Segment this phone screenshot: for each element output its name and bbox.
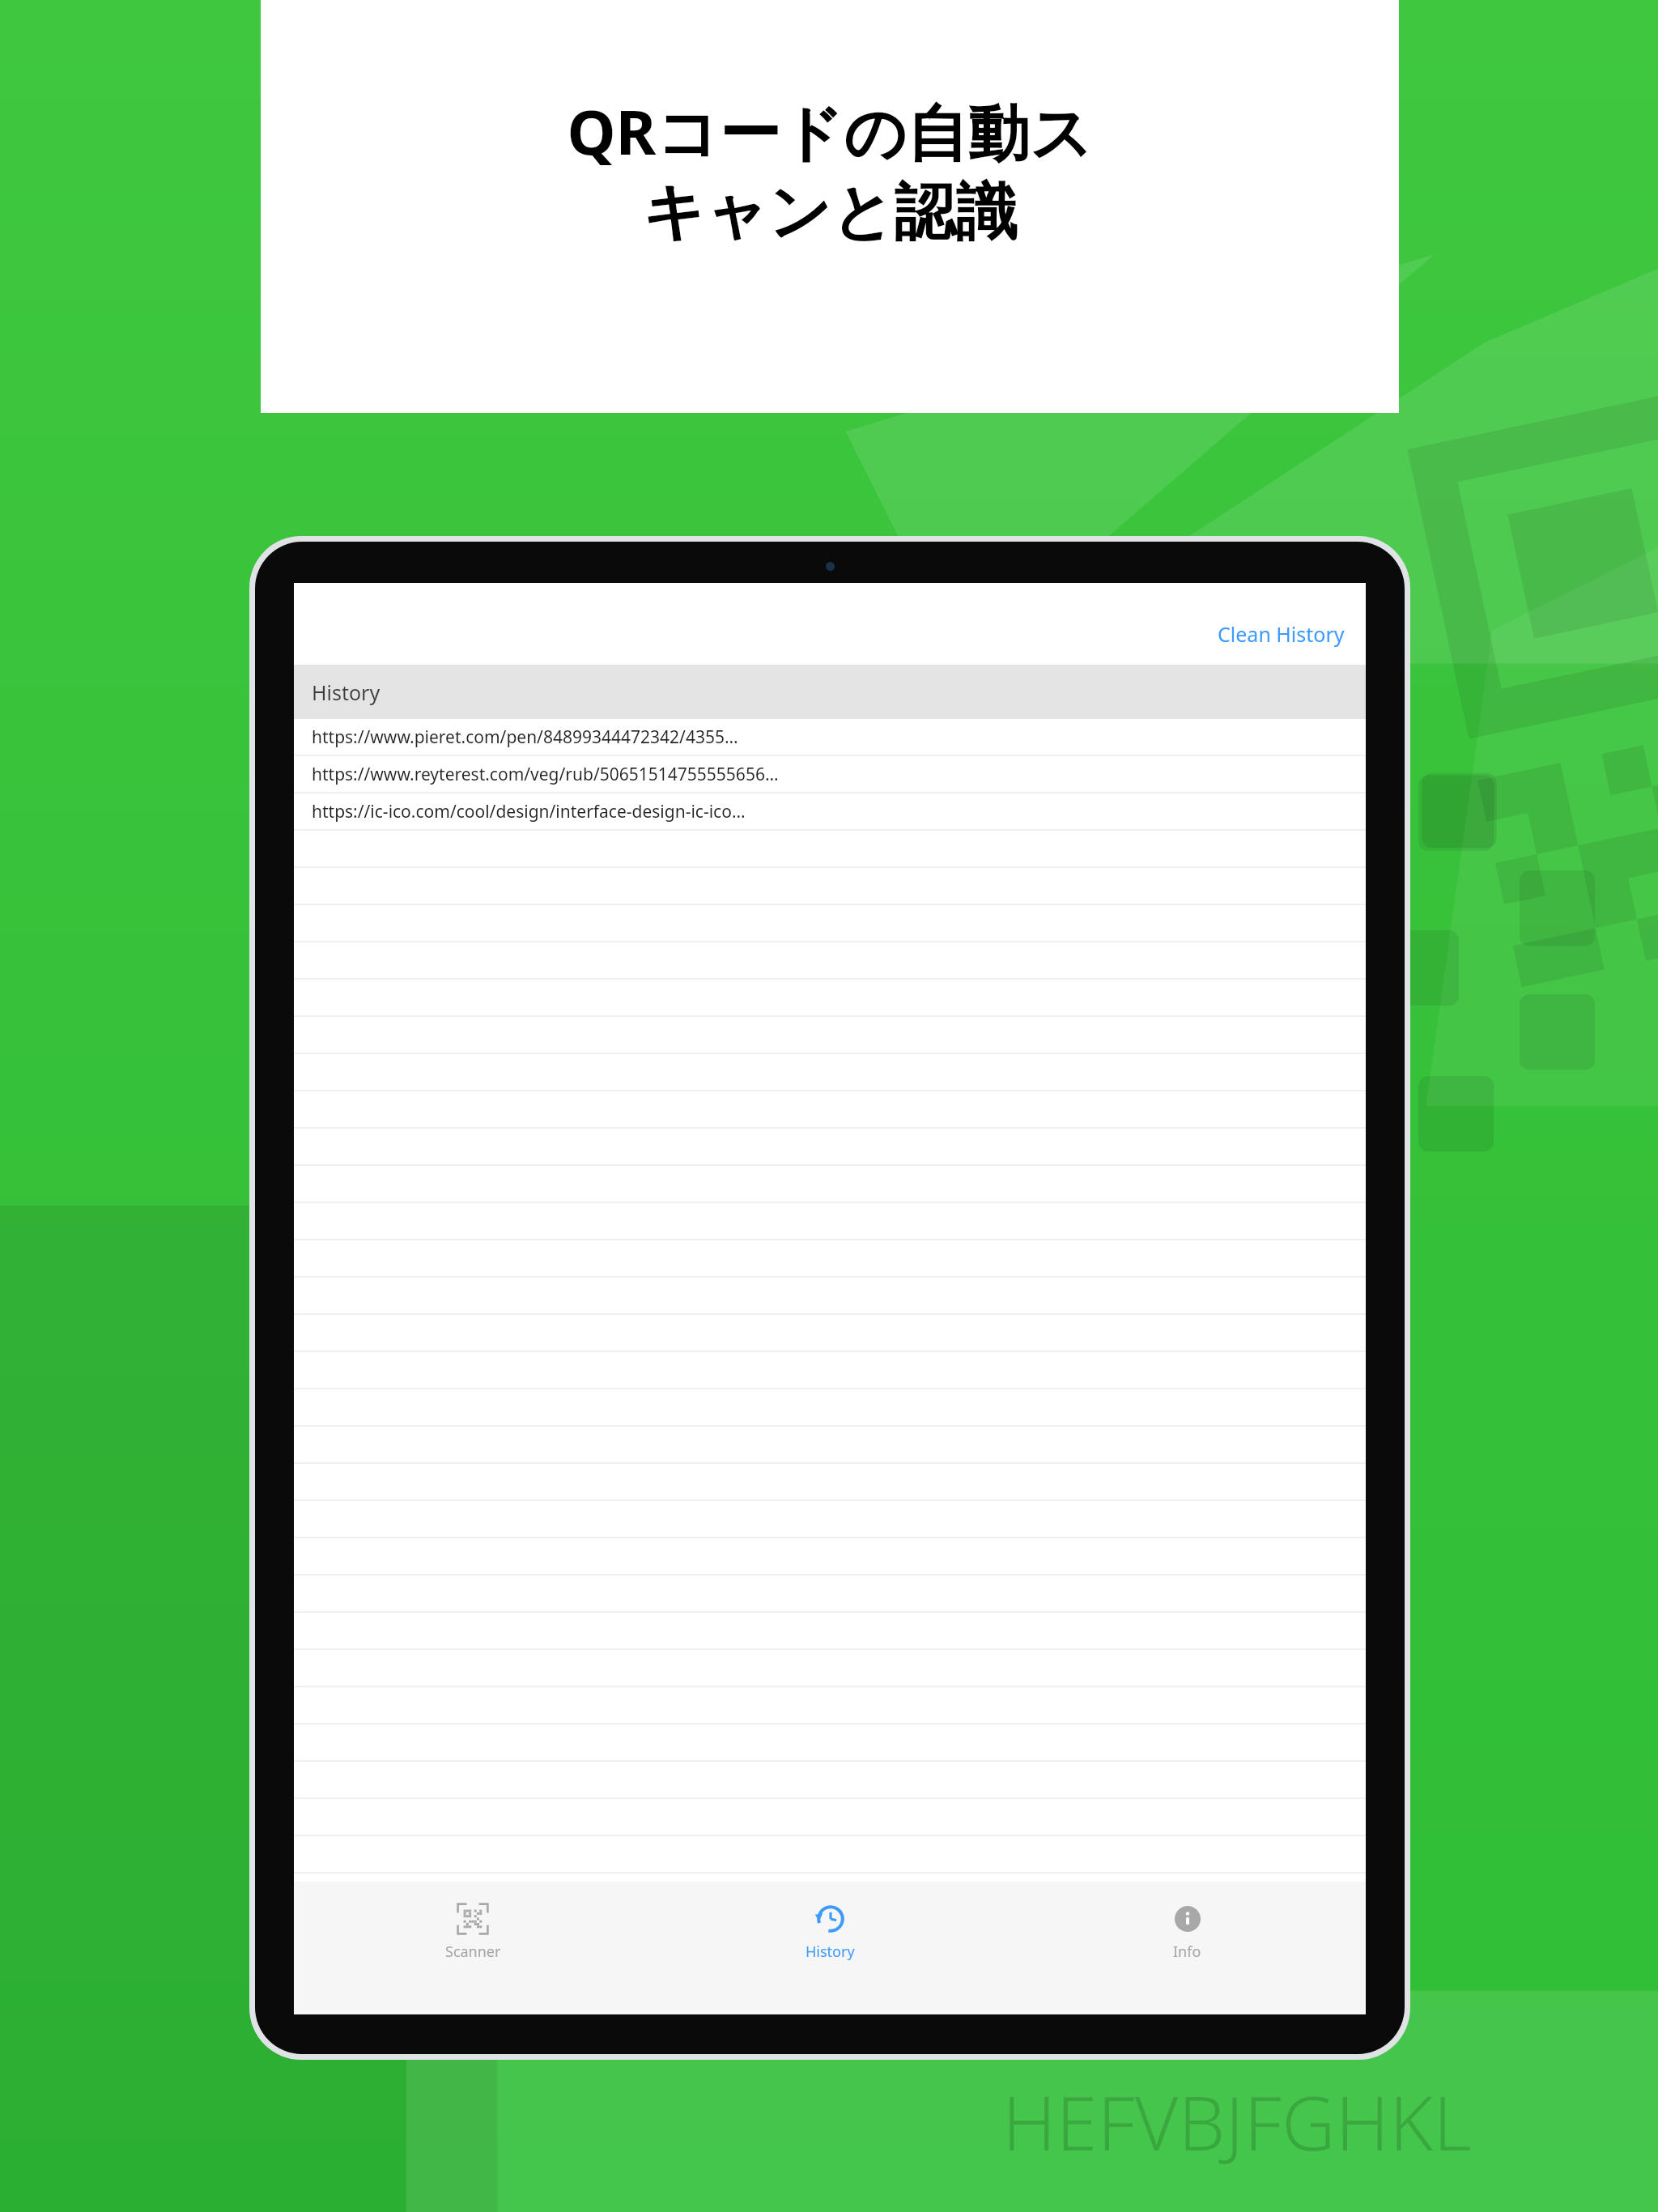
- staticText: QRコードの自動ス キャンと認識: [567, 89, 1093, 251]
- button[interactable]: https://www.pieret.com/pen/8489934447234…: [294, 719, 1366, 756]
- button[interactable]: History: [652, 1882, 1009, 2014]
- button[interactable]: https://www.reyterest.com/veg/rub/506515…: [294, 756, 1366, 793]
- button[interactable]: Info: [1009, 1882, 1366, 2014]
- staticText: https://ic-ico.com/cool/design/interface…: [312, 800, 746, 823]
- button[interactable]: https://ic-ico.com/cool/design/interface…: [294, 793, 1366, 831]
- staticText: History: [312, 678, 380, 706]
- staticText: Info: [1173, 1942, 1201, 1962]
- button[interactable]: Clean History: [1197, 609, 1366, 659]
- staticText: HEFVBJFGHKL: [1002, 2071, 1472, 2172]
- staticText: History: [806, 1942, 855, 1962]
- staticText: https://www.pieret.com/pen/8489934447234…: [312, 725, 738, 749]
- staticText: Scanner: [445, 1942, 501, 1962]
- button[interactable]: Scanner: [294, 1882, 652, 2014]
- staticText: https://www.reyterest.com/veg/rub/506515…: [312, 763, 779, 786]
- staticText: Clean History: [1218, 620, 1345, 648]
